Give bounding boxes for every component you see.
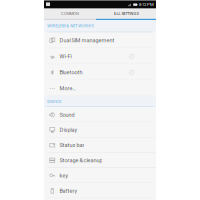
staticText: DEVICE bbox=[47, 99, 61, 104]
staticText: Display bbox=[59, 127, 77, 133]
staticText: More... bbox=[59, 85, 75, 92]
button[interactable]: COMMON bbox=[44, 9, 96, 19]
button[interactable]: Status bar bbox=[44, 138, 156, 153]
button[interactable]: Storage & cleanup bbox=[44, 153, 156, 168]
staticText: key bbox=[59, 172, 68, 179]
staticText: Wi-Fi bbox=[59, 53, 71, 60]
staticText: Sound bbox=[59, 112, 74, 118]
staticText: Dual SIM management bbox=[59, 37, 114, 44]
button[interactable]: key bbox=[44, 168, 156, 183]
staticText: Storage & cleanup bbox=[59, 157, 102, 164]
button[interactable]: ALL SETTINGS bbox=[96, 9, 156, 19]
button[interactable]: More... bbox=[44, 80, 156, 96]
button[interactable]: Display bbox=[44, 122, 156, 138]
staticText: ALL SETTINGS bbox=[113, 11, 138, 16]
button[interactable]: Bluetooth bbox=[44, 64, 156, 80]
button[interactable]: Dual SIM management bbox=[44, 32, 156, 48]
button[interactable]: Battery bbox=[44, 183, 156, 198]
button[interactable]: Sound bbox=[44, 107, 156, 122]
staticText: COMMON bbox=[61, 11, 79, 16]
staticText: Battery bbox=[59, 188, 77, 194]
button[interactable]: Wi-Fi bbox=[44, 48, 156, 64]
staticText: 8:12 PM bbox=[139, 2, 154, 7]
staticText: WIRELESS & NETWORKS bbox=[47, 23, 93, 28]
staticText: Status bar bbox=[59, 142, 84, 148]
staticText: Bluetooth bbox=[59, 69, 82, 76]
